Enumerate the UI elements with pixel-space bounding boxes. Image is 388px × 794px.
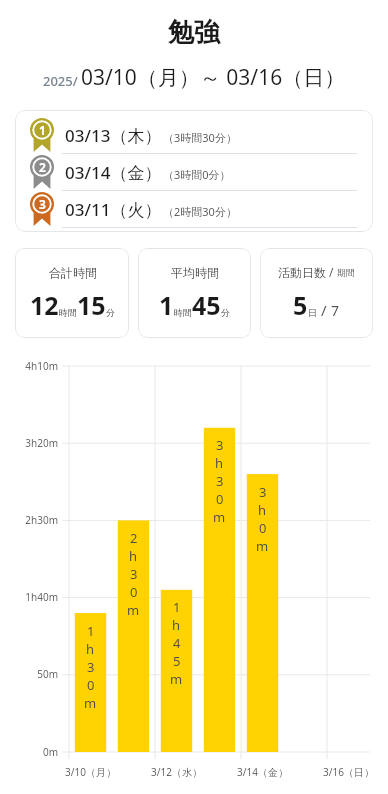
staticText: 3/14（金） <box>237 765 288 779</box>
staticText: 1 <box>39 122 46 138</box>
staticText: （3時間0分） <box>163 167 231 182</box>
staticText: m <box>213 508 226 526</box>
staticText: 勉強 <box>168 16 220 49</box>
staticText: m <box>84 694 97 712</box>
staticText: 3/16（日） <box>323 765 374 779</box>
button[interactable]: Rank 3 <box>15 191 373 228</box>
staticText: h <box>86 640 95 658</box>
staticText: 期間 <box>337 267 355 278</box>
staticText: 3 <box>259 483 267 501</box>
staticText: 7 <box>331 301 340 320</box>
staticText: 分 <box>221 307 230 318</box>
staticText: 合計時間 <box>49 265 97 280</box>
staticText: 0 <box>87 676 95 694</box>
staticText: 45 <box>192 288 221 322</box>
button[interactable]: 活動日数 / <box>260 248 373 338</box>
staticText: 3/12（水） <box>151 765 202 779</box>
staticText: 日 <box>308 307 317 318</box>
staticText: 2 <box>39 159 46 175</box>
staticText: 5 <box>293 288 308 322</box>
staticText: h <box>258 501 267 519</box>
staticText: 12 <box>30 288 59 322</box>
staticText: 平均時間 <box>171 265 219 280</box>
staticText: 2 <box>130 529 138 547</box>
staticText: 4 <box>173 634 181 652</box>
staticText: 5 <box>173 652 181 670</box>
other: Rank 3 <box>30 191 54 227</box>
staticText: 3 <box>130 565 138 583</box>
staticText: 0m <box>42 745 58 759</box>
staticText: m <box>127 601 140 619</box>
staticText: 4h10m <box>25 359 58 373</box>
staticText: h <box>129 547 138 565</box>
other: Rank 1 <box>30 117 54 153</box>
staticText: 時間 <box>174 307 192 318</box>
staticText: m <box>256 537 269 555</box>
staticText: 03/13（木） <box>65 124 162 147</box>
staticText: 0 <box>130 583 138 601</box>
staticText: 3 <box>216 436 224 454</box>
staticText: h <box>215 454 224 472</box>
button[interactable]: Rank 2 <box>15 154 373 191</box>
staticText: 分 <box>106 307 115 318</box>
staticText: 3 <box>216 472 224 490</box>
staticText: m <box>170 670 183 688</box>
staticText: 03/11（火） <box>65 198 162 221</box>
staticText: （3時間30分） <box>163 130 237 145</box>
staticText: 15 <box>77 288 106 322</box>
staticText: 0 <box>259 519 267 537</box>
staticText: 活動日数 / <box>278 264 337 280</box>
staticText: / <box>321 300 327 320</box>
staticText: 3 <box>87 658 95 676</box>
button[interactable]: 平均時間 <box>138 248 251 338</box>
button[interactable]: Rank 1 <box>15 117 373 154</box>
staticText: 50m <box>37 667 58 681</box>
staticText: 03/10（月）～ 03/16（日） <box>81 63 346 92</box>
staticText: 3/10（月） <box>65 765 116 779</box>
staticText: 1 <box>173 598 181 616</box>
staticText: 1 <box>87 622 95 640</box>
staticText: 03/14（金） <box>65 161 162 184</box>
staticText: 1 <box>159 288 174 322</box>
staticText: 時間 <box>59 307 77 318</box>
staticText: 0 <box>216 490 224 508</box>
staticText: 3h20m <box>25 436 58 450</box>
other: Rank 2 <box>30 154 54 190</box>
staticText: 3 <box>39 196 46 212</box>
button[interactable]: Rank 1 <box>15 110 373 232</box>
staticText: （2時間30分） <box>163 204 237 219</box>
staticText: 2025/ <box>43 72 78 90</box>
staticText: 2h30m <box>25 513 58 527</box>
staticText: h <box>172 616 181 634</box>
staticText: 1h40m <box>25 590 58 604</box>
button[interactable]: 合計時間 <box>15 248 129 338</box>
